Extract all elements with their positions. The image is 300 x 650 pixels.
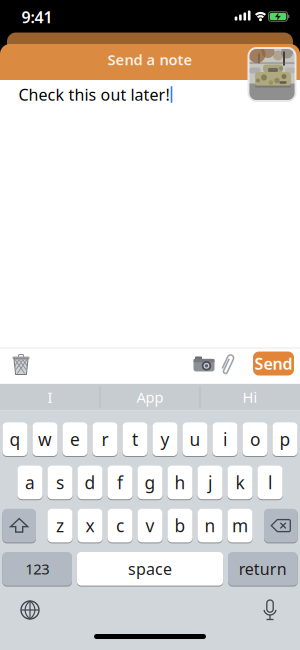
staticText: space [128,558,172,579]
staticText: I [47,387,52,407]
staticText: p [279,428,290,451]
button[interactable]: Dictation [260,597,280,623]
staticText: w [38,428,52,451]
staticText: m [232,514,248,537]
staticText: o [250,428,260,451]
button[interactable]: w [32,422,58,456]
button[interactable]: d [77,465,103,500]
staticText: a [25,471,35,494]
staticText: App [136,387,163,407]
staticText: t [132,428,138,451]
button[interactable]: y [152,422,178,456]
button[interactable]: Shift [2,508,36,543]
button[interactable]: return [228,551,298,586]
staticText: x [85,514,94,537]
button[interactable]: k [227,465,253,500]
staticText: Check this out later! [18,84,169,105]
staticText: d [84,471,95,494]
staticText: j [208,471,212,494]
button[interactable]: g [137,465,163,500]
button[interactable]: v [137,508,163,543]
staticText: v [145,514,154,537]
button[interactable]: space [77,551,223,586]
staticText: b [174,514,185,537]
button[interactable]: x [77,508,103,543]
button[interactable]: l [257,465,283,500]
staticText: s [56,471,64,494]
staticText: e [70,428,80,451]
button[interactable]: I [2,385,98,409]
staticText: n [204,514,215,537]
staticText: Hi [242,387,257,407]
button[interactable]: q [2,422,28,456]
staticText: r [101,428,108,451]
staticText: c [116,514,124,537]
staticText: 123 [25,559,49,579]
button[interactable]: i [212,422,238,456]
button[interactable]: a [17,465,43,500]
staticText: return [239,558,287,579]
button[interactable]: t [122,422,148,456]
staticText: k [235,471,244,494]
button[interactable]: p [272,422,298,456]
staticText: h [174,471,185,494]
button[interactable]: Delete [264,508,298,543]
button[interactable]: u [182,422,208,456]
staticText: Send [254,353,292,374]
button[interactable]: App [102,385,198,409]
button[interactable]: z [47,508,73,543]
button[interactable]: f [107,465,133,500]
button[interactable]: Send [253,351,294,375]
button[interactable]: Camera [190,350,218,378]
button[interactable]: c [107,508,133,543]
staticText: u [189,428,200,451]
button[interactable]: Next keyboard [17,597,43,623]
button[interactable]: 123 [2,551,72,586]
staticText: l [268,471,272,494]
button[interactable]: j [197,465,223,500]
staticText: q [9,428,20,451]
button[interactable]: e [62,422,88,456]
staticText: z [56,514,64,537]
button[interactable]: Photo attachment [247,47,296,102]
button[interactable]: r [92,422,118,456]
staticText: g [144,471,155,494]
button[interactable]: o [242,422,268,456]
button[interactable]: Attach file [215,350,239,378]
button[interactable]: n [197,508,223,543]
button[interactable]: Delete note [6,350,36,380]
button[interactable]: s [47,465,73,500]
staticText: f [117,471,123,494]
button[interactable]: h [167,465,193,500]
button[interactable]: m [227,508,253,543]
button[interactable]: Hi [202,385,298,409]
button[interactable]: b [167,508,193,543]
staticText: Send a note [107,50,192,69]
staticText: i [223,428,227,451]
staticText: y [160,428,169,451]
staticText: 9:41 [21,6,52,28]
